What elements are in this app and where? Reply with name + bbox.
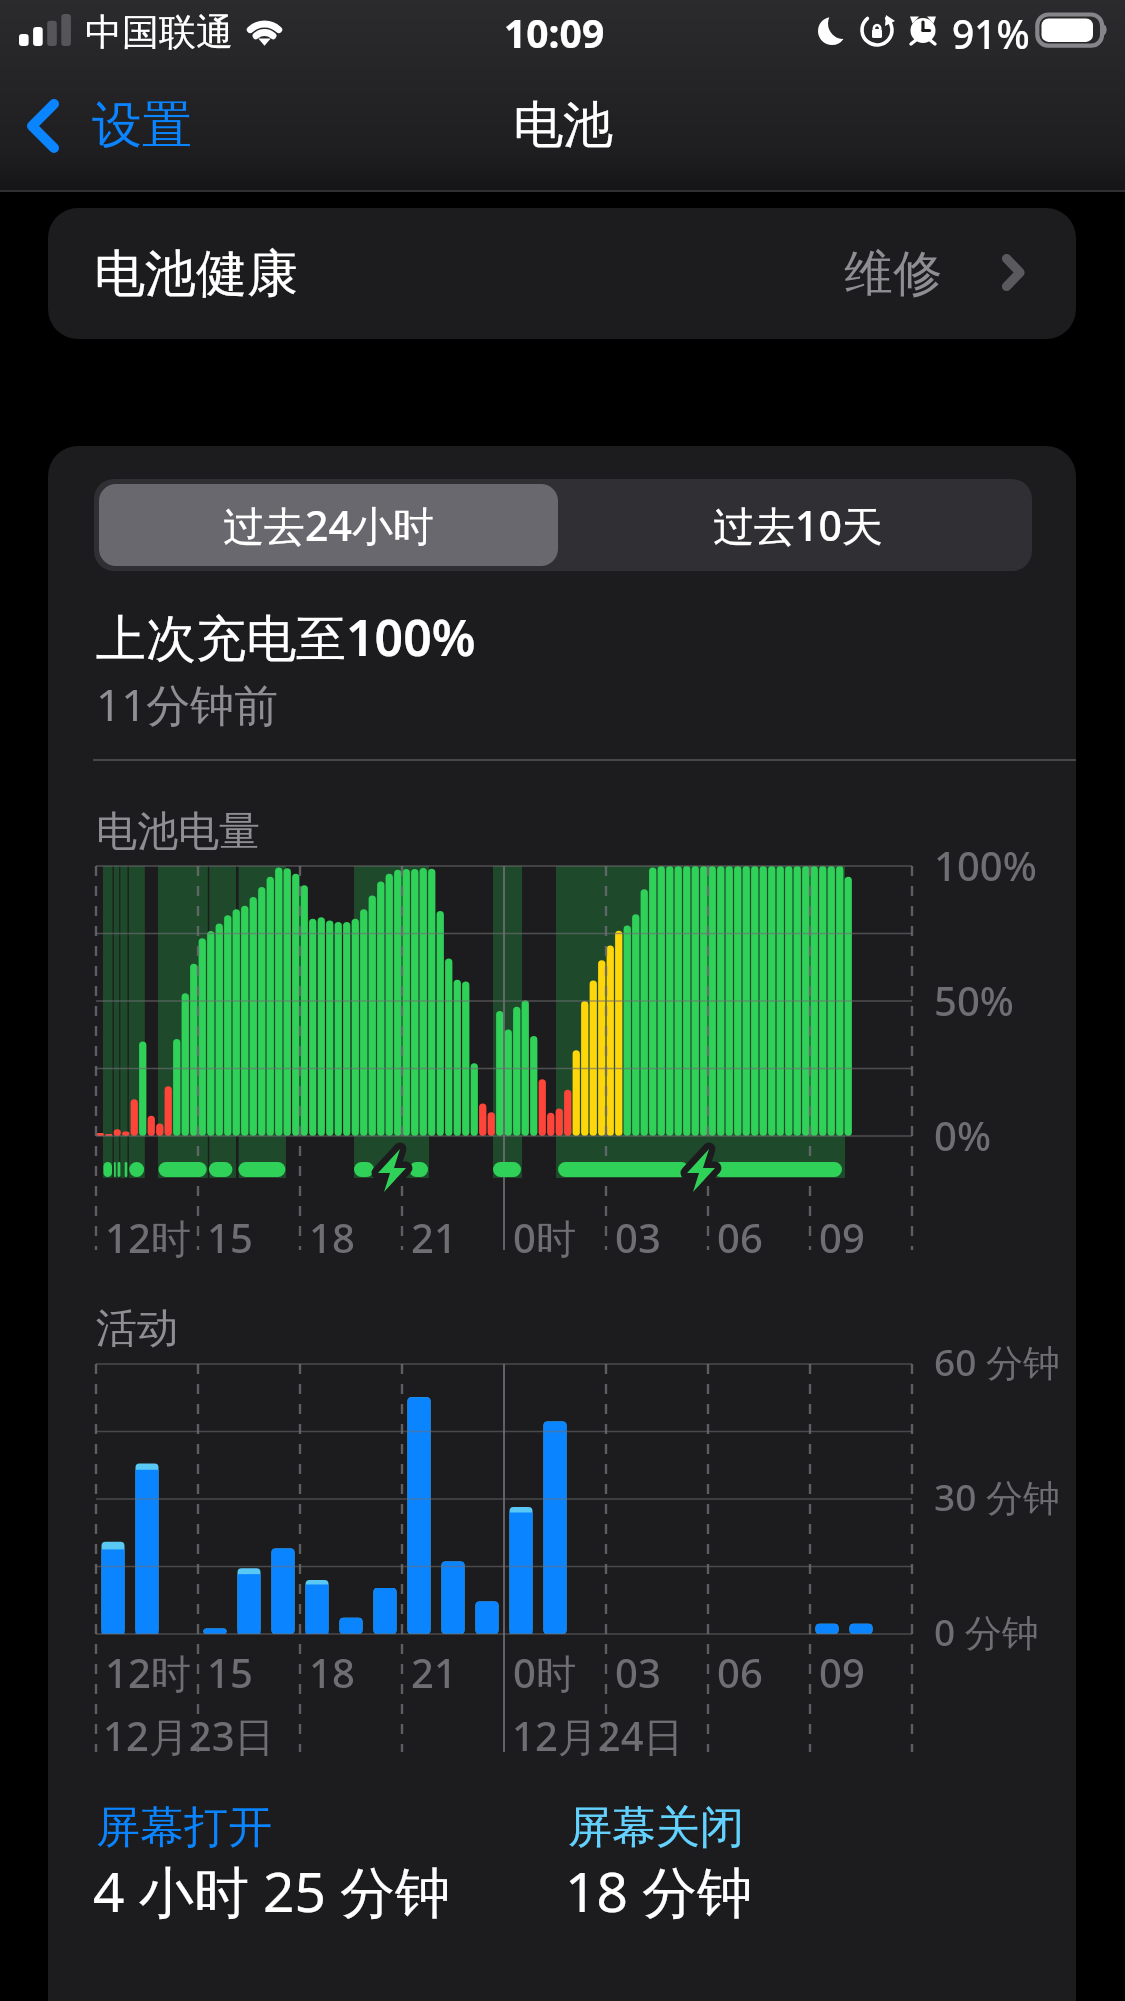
staticText: 0时 [513,1645,576,1700]
staticText: 上次充电至100% [96,603,476,671]
staticText: 0% [934,1108,991,1162]
staticText: 12月23日 [103,1708,275,1763]
staticText: 09 [819,1645,865,1699]
staticText: 06 [717,1645,763,1699]
staticText: 30 分钟 [934,1471,1060,1522]
staticText: 屏幕关闭 [568,1800,744,1855]
staticText: 12月24日 [512,1708,684,1763]
staticText: 50% [934,973,1014,1027]
staticText: 电池 [513,94,613,157]
staticText: 21 [411,1210,457,1264]
staticText: 屏幕打开 [96,1800,272,1855]
staticText: 0时 [513,1210,576,1265]
staticText: 0 分钟 [934,1606,1039,1657]
staticText: 09 [819,1210,865,1264]
staticText: 4 小时 25 分钟 [93,1853,451,1928]
staticText: 100% [934,838,1037,892]
staticText: 60 分钟 [934,1336,1060,1387]
staticText: 15 [207,1210,253,1264]
staticText: 12时 [105,1645,191,1700]
button[interactable]: 过去24小时 [99,484,558,566]
staticText: 03 [615,1645,661,1699]
staticText: 06 [717,1210,763,1264]
staticText: 过去24小时 [223,497,434,553]
button[interactable]: 电池健康 维修 [48,208,1076,339]
staticText: 12时 [105,1210,191,1265]
button[interactable]: 返回设置 [24,94,192,157]
staticText: 18 分钟 [565,1853,753,1928]
staticText: 电池电量 [96,806,260,858]
button[interactable]: 过去10天 [563,479,1032,571]
staticText: 中国联通 [85,9,233,56]
staticText: 过去10天 [713,497,883,553]
staticText: 21 [411,1645,457,1699]
staticText: 电池健康 [94,242,298,306]
staticText: 18 [309,1210,355,1264]
staticText: 10:09 [504,6,605,59]
staticText: 91% [952,7,1030,60]
staticText: 设置 [92,94,192,157]
staticText: 活动 [96,1303,178,1355]
staticText: 维修 [844,243,942,305]
staticText: 11分钟前 [96,674,279,734]
staticText: 18 [309,1645,355,1699]
staticText: 15 [207,1645,253,1699]
staticText: 03 [615,1210,661,1264]
